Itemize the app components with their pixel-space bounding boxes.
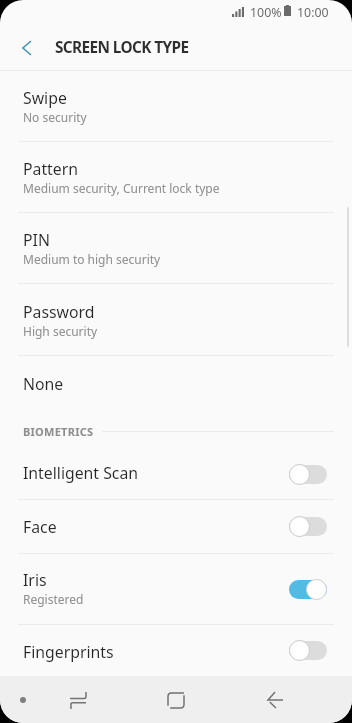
staticText: BIOMETRICS — [23, 424, 94, 439]
staticText: 10:00 — [297, 4, 329, 21]
staticText: Medium to high security — [23, 251, 161, 267]
staticText: Iris — [23, 569, 47, 591]
button[interactable]: Recents — [60, 682, 96, 718]
button[interactable]: Back — [257, 682, 293, 718]
button[interactable]: Swipe — [0, 71, 352, 141]
button[interactable]: Pattern — [0, 142, 352, 212]
staticText: High security — [23, 323, 98, 339]
staticText: Registered — [23, 591, 84, 607]
staticText: Pattern — [23, 158, 79, 180]
button[interactable]: Hide keyboard — [9, 686, 37, 714]
staticText: SCREEN LOCK TYPE — [55, 37, 189, 58]
staticText: Swipe — [23, 87, 67, 109]
button[interactable]: Password — [0, 284, 352, 355]
button[interactable]: Navigate up — [3, 27, 49, 69]
staticText: Password — [23, 301, 95, 323]
staticText: Fingerprints — [23, 641, 114, 663]
button[interactable]: PIN — [0, 213, 352, 283]
staticText: Face — [23, 516, 57, 538]
staticText: Medium security, Current lock type — [23, 180, 220, 196]
button[interactable]: Home — [158, 682, 194, 718]
button[interactable]: Fingerprints — [0, 625, 352, 676]
button[interactable]: Iris — [0, 554, 352, 624]
staticText: Intelligent Scan — [23, 462, 139, 484]
staticText: None — [23, 373, 64, 395]
staticText: 100% — [250, 4, 282, 21]
button[interactable]: Face — [0, 500, 352, 553]
staticText: PIN — [23, 229, 50, 251]
staticText: No security — [23, 109, 87, 125]
button[interactable]: Intelligent Scan — [0, 450, 352, 499]
button[interactable]: None — [0, 356, 352, 412]
